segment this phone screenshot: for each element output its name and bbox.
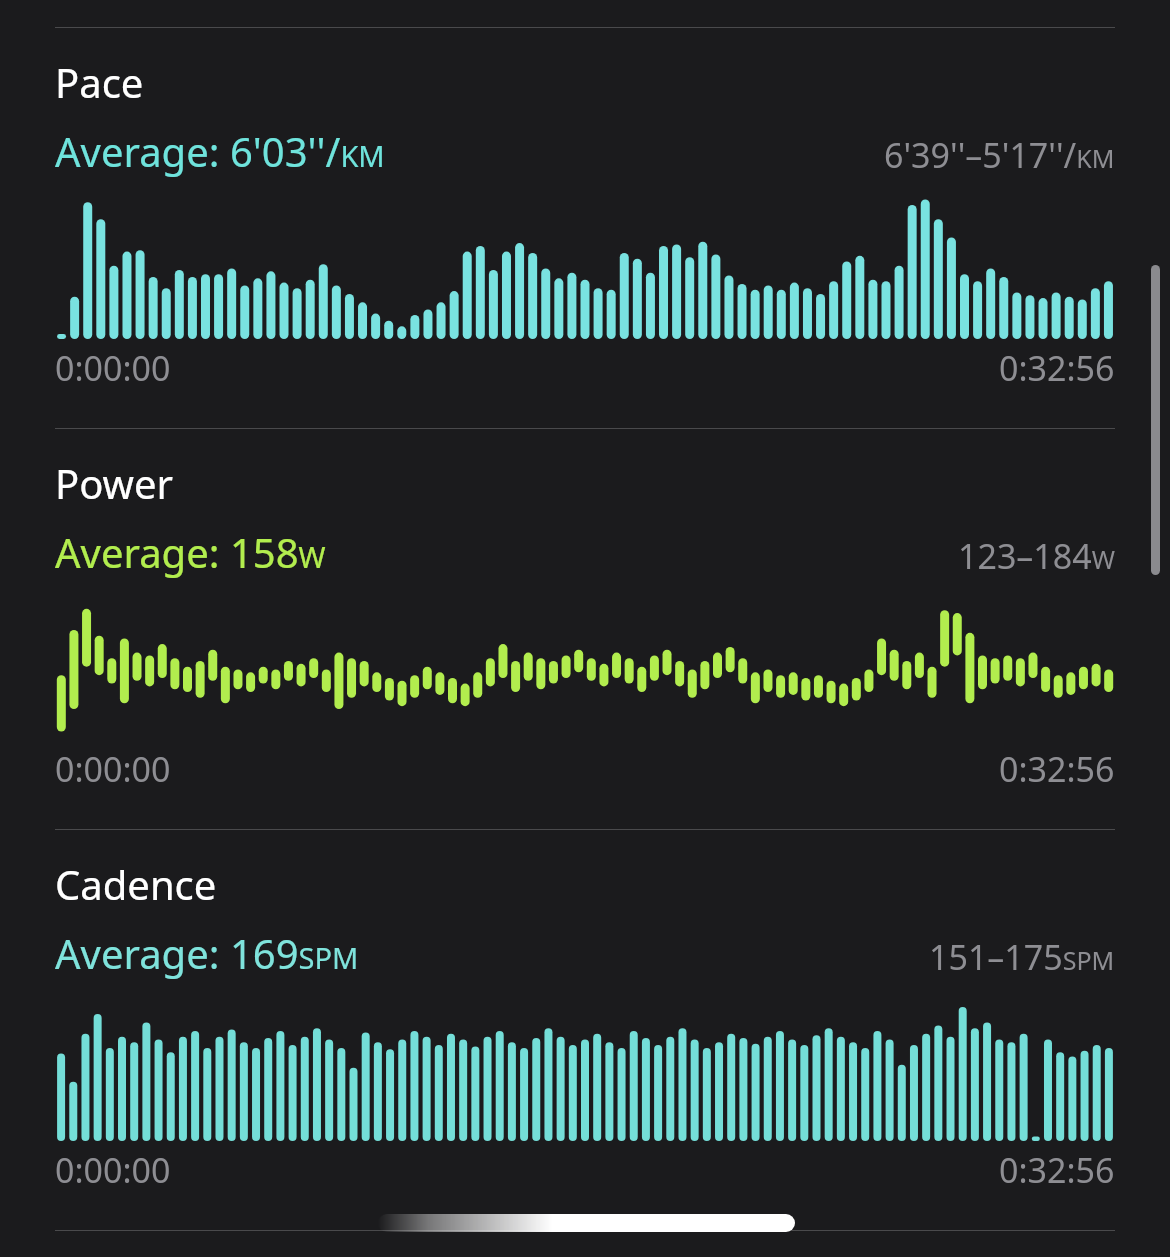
staticText: 123–184W (958, 533, 1115, 579)
button[interactable]: Power (0, 428, 1170, 829)
staticText: Average: 6'03''/KM (55, 124, 385, 178)
staticText: 0:00:00 (55, 345, 171, 391)
staticText: Cadence (55, 857, 217, 911)
staticText: 0:32:56 (999, 746, 1115, 792)
button[interactable]: Pace (0, 27, 1170, 428)
staticText: Pace (55, 55, 144, 109)
staticText: 0:32:56 (999, 1147, 1115, 1193)
button[interactable]: Cadence (0, 829, 1170, 1230)
staticText: Average: 169SPM (55, 926, 359, 980)
staticText: 6'39''–5'17''/KM (884, 132, 1115, 178)
staticText: Power (55, 456, 174, 510)
staticText: 0:32:56 (999, 345, 1115, 391)
staticText: 151–175SPM (929, 934, 1115, 980)
staticText: Average: 158W (55, 525, 326, 579)
staticText: 0:00:00 (55, 1147, 171, 1193)
staticText: 0:00:00 (55, 746, 171, 792)
